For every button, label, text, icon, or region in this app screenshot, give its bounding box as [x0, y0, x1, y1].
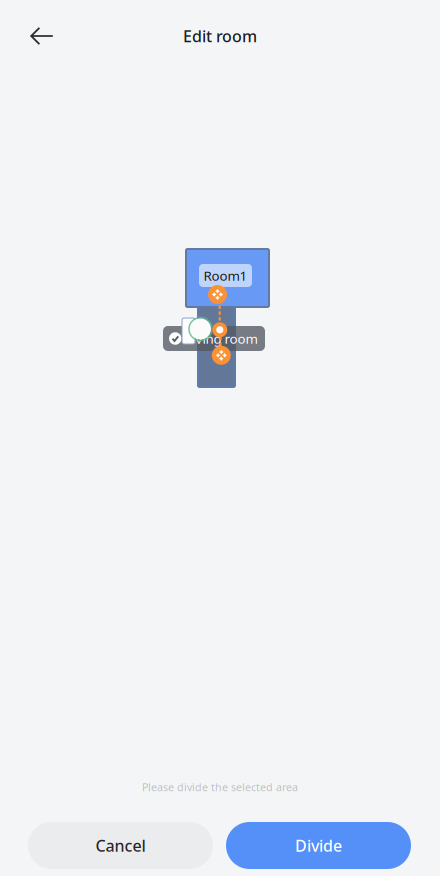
staticText: Edit room	[183, 25, 257, 47]
button[interactable]: Back	[20, 14, 64, 58]
button[interactable]: Living room	[163, 326, 265, 351]
button[interactable]: Move divider end	[212, 346, 231, 365]
button[interactable]: Living room area	[198, 307, 235, 387]
button[interactable]: Divider pivot	[212, 322, 227, 337]
staticText: Divide	[295, 835, 342, 856]
staticText: Please divide the selected area	[142, 780, 298, 794]
button[interactable]: Cancel	[28, 822, 213, 869]
staticText: Cancel	[95, 835, 145, 856]
button[interactable]: Move divider start	[208, 285, 227, 304]
staticText: Room1	[203, 267, 247, 284]
staticText: Living room	[185, 330, 257, 347]
button[interactable]: Room1 area, selected	[186, 249, 269, 307]
button[interactable]: Divide	[226, 822, 411, 869]
